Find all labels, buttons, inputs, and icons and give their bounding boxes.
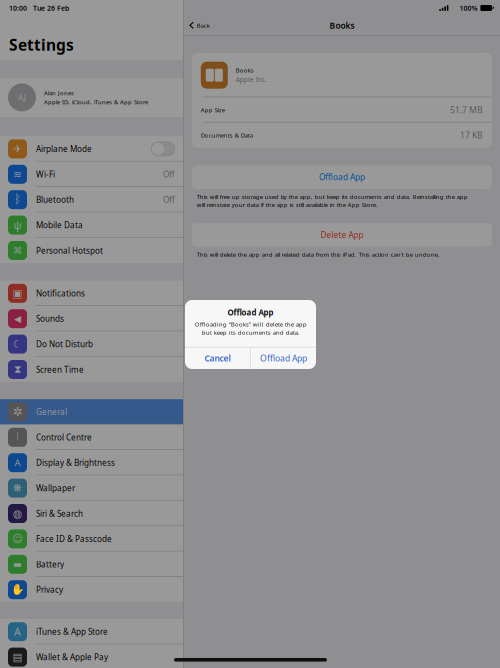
button[interactable]: Back (184, 16, 216, 35)
staticText: Books (236, 66, 254, 74)
button[interactable]: ✲ (0, 399, 183, 425)
staticText: Battery (36, 559, 64, 570)
staticText: 17 KB (460, 129, 483, 141)
staticText: Alan Jones (44, 89, 74, 97)
staticText: Apple ID, iCloud, iTunes & App Store (44, 98, 148, 106)
staticText: Documents & Data (201, 131, 253, 139)
staticText: ▤ (12, 651, 22, 663)
staticText: ☺ (12, 533, 23, 545)
button[interactable]: ✋ (0, 577, 183, 602)
staticText: Offload App (260, 352, 307, 364)
staticText: ▣ (12, 287, 22, 299)
button[interactable]: ❋ (0, 475, 183, 501)
staticText: This will delete the app and all related… (197, 251, 440, 259)
staticText: ψ (13, 218, 21, 232)
staticText: Wallet & Apple Pay (36, 652, 108, 663)
button[interactable]: ◍ (0, 501, 183, 526)
button[interactable]: Offload App (192, 165, 492, 189)
staticText: Settings (9, 34, 74, 55)
staticText: Offload App (319, 171, 365, 183)
staticText: Books (329, 20, 354, 31)
staticText: Apple Inc. (236, 75, 267, 84)
staticText: ⦚ (16, 432, 18, 443)
button[interactable]: ⦚ (0, 425, 183, 450)
staticText: Airplane Mode (36, 143, 92, 154)
staticText: AJ (17, 91, 26, 104)
staticText: Off (163, 169, 175, 180)
staticText: ≋ (13, 168, 22, 180)
button[interactable]: ▣ (0, 281, 183, 306)
button[interactable]: ≋ (0, 162, 183, 187)
button[interactable]: ▬ (0, 552, 183, 577)
staticText: ❋ (13, 482, 22, 494)
staticText: Face ID & Passcode (36, 533, 112, 544)
staticText: Do Not Disturb (36, 339, 93, 350)
button[interactable]: ☾ (0, 331, 183, 357)
staticText: Display & Brightness (36, 457, 115, 468)
staticText: ☾ (12, 338, 22, 350)
staticText: Privacy (36, 584, 63, 595)
button[interactable]: Cancel (185, 347, 250, 369)
staticText: ✋ (11, 583, 24, 596)
staticText: Sounds (36, 313, 64, 324)
staticText: Wi-Fi (36, 169, 55, 180)
staticText: General (36, 406, 67, 417)
staticText: Off (163, 194, 175, 205)
staticText: ◀ (14, 313, 21, 324)
staticText: ✲ (12, 405, 22, 419)
staticText: 100% (459, 3, 477, 13)
staticText: Siri & Search (36, 508, 83, 519)
staticText: Back (197, 22, 210, 29)
staticText: Personal Hotspot (36, 245, 103, 256)
staticText: ▬ (13, 559, 22, 570)
staticText: Wallpaper (36, 483, 75, 494)
staticText: ◍ (13, 507, 22, 520)
button[interactable]: ▤ (0, 644, 183, 668)
button[interactable]: ⧗ (0, 357, 183, 382)
staticText: ⌘ (13, 245, 22, 256)
button[interactable]: ⌘ (0, 238, 183, 263)
staticText: Control Centre (36, 432, 92, 443)
staticText: Mobile Data (36, 220, 83, 231)
staticText: Bluetooth (36, 194, 74, 205)
staticText: Tue 26 Feb (33, 3, 69, 13)
button[interactable]: ᛒ (0, 187, 183, 212)
staticText: Cancel (205, 352, 231, 364)
staticText: ⧗ (14, 364, 21, 375)
staticText: Delete App (320, 229, 363, 241)
button[interactable]: A (0, 450, 183, 475)
button[interactable]: A (0, 619, 183, 644)
staticText: App Size (201, 106, 225, 114)
staticText: A (14, 624, 21, 639)
staticText: ✈ (13, 143, 22, 155)
staticText: 10:00 (9, 3, 27, 13)
staticText: Offload App (227, 307, 273, 318)
button[interactable]: ☺ (0, 526, 183, 552)
staticText: ᛒ (14, 194, 21, 206)
button[interactable]: Delete App (192, 223, 492, 247)
button[interactable]: ✈ (0, 136, 183, 162)
button[interactable]: ◀ (0, 306, 183, 331)
staticText: 51.7 MB (450, 104, 483, 116)
staticText: Offloading “Books” will delete the app b… (194, 320, 306, 336)
button[interactable]: Offload App (251, 347, 316, 369)
staticText: A (14, 456, 20, 469)
staticText: Screen Time (36, 364, 84, 375)
staticText: Notifications (36, 288, 85, 299)
staticText: This will free up storage used by the ap… (197, 193, 468, 209)
staticText: iTunes & App Store (36, 626, 108, 637)
button[interactable]: AJ (0, 78, 183, 117)
button[interactable]: ψ (0, 212, 183, 238)
